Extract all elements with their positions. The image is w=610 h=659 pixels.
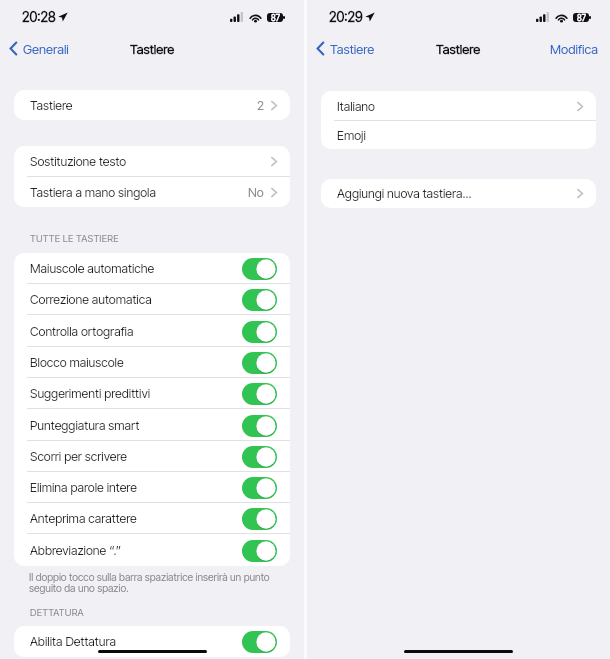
staticText: Tastiere (30, 98, 73, 113)
button[interactable]: Controlla ortografia, attivo (242, 321, 277, 343)
button[interactable]: Anteprima carattere (14, 503, 290, 534)
button[interactable]: Italiano (321, 91, 596, 121)
staticText: Blocco maiuscole (30, 355, 124, 370)
staticText: Modifica (550, 41, 598, 57)
button[interactable]: Suggerimenti predittivi (14, 378, 290, 409)
staticText: Elimina parole intere (30, 480, 137, 495)
button[interactable]: Emoji (321, 121, 596, 149)
button[interactable]: Modifica (538, 33, 610, 64)
staticText: TUTTE LE TASTIERE (30, 233, 119, 245)
button[interactable]: Generali (0, 33, 75, 64)
button[interactable]: Abbreviazione “.” (14, 535, 290, 566)
staticText: Tastiera a mano singola (30, 185, 156, 200)
button[interactable]: Anteprima carattere, attivo (242, 508, 277, 530)
button[interactable]: Abilita Dettatura, attivo (242, 631, 277, 653)
button[interactable]: Correzione automatica (14, 284, 290, 315)
button[interactable]: Suggerimenti predittivi, attivo (242, 383, 277, 405)
staticText: Anteprima carattere (30, 511, 137, 526)
staticText: Tastiere (330, 41, 375, 57)
staticText: Scorri per scrivere (30, 449, 127, 464)
staticText: Abbreviazione “.” (30, 543, 122, 558)
button[interactable]: Punteggiatura smart, attivo (242, 415, 277, 437)
button[interactable]: Tastiere (14, 90, 290, 120)
staticText: 20:28 (22, 9, 56, 25)
staticText: DETTATURA (30, 607, 84, 619)
staticText: Emoji (337, 128, 366, 143)
button[interactable]: Elimina parole intere (14, 472, 290, 503)
staticText: Aggiungi nuova tastiera... (337, 186, 472, 201)
button[interactable]: Sostituzione testo (14, 146, 290, 177)
button[interactable]: Maiuscole automatiche (14, 253, 290, 284)
button[interactable]: Abilita Dettatura (14, 626, 290, 657)
staticText: Generali (23, 41, 69, 57)
button[interactable]: Controlla ortografia (14, 316, 290, 347)
staticText: No (248, 185, 264, 200)
button[interactable]: Blocco maiuscole (14, 347, 290, 378)
button[interactable]: Blocco maiuscole, attivo (242, 352, 277, 374)
button[interactable]: Scorri per scrivere (14, 441, 290, 472)
button[interactable]: Scorri per scrivere, attivo (242, 446, 277, 468)
button[interactable]: Tastiera a mano singola (14, 177, 290, 207)
button[interactable]: Punteggiatura smart (14, 410, 290, 441)
button[interactable]: Correzione automatica, attivo (242, 289, 277, 311)
staticText: Abilita Dettatura (30, 634, 116, 649)
button[interactable]: Tastiere (307, 33, 381, 64)
staticText: 87 (271, 13, 280, 22)
staticText: 87 (577, 13, 586, 22)
staticText: Il doppio tocco sulla barra spaziatrice … (29, 571, 270, 594)
staticText: Suggerimenti predittivi (30, 386, 151, 401)
button[interactable]: Aggiungi nuova tastiera... (321, 179, 596, 208)
staticText: Maiuscole automatiche (30, 261, 155, 276)
button[interactable]: Abbreviazione “.”, attivo (242, 540, 277, 562)
staticText: Tastiere (436, 41, 481, 57)
staticText: Controlla ortografia (30, 324, 134, 339)
staticText: Italiano (337, 99, 375, 114)
staticText: Correzione automatica (30, 292, 152, 307)
staticText: Punteggiatura smart (30, 418, 140, 433)
staticText: Tastiere (130, 41, 175, 57)
staticText: 2 (257, 98, 264, 113)
staticText: 20:29 (329, 9, 363, 25)
button[interactable]: Maiuscole automatiche, attivo (242, 258, 277, 280)
button[interactable]: Elimina parole intere, attivo (242, 477, 277, 499)
staticText: Sostituzione testo (30, 154, 127, 169)
